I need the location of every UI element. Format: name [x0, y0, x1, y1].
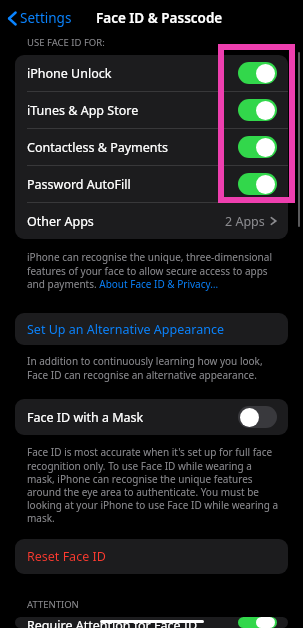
staticText: iTunes & App Store	[27, 102, 238, 119]
button[interactable]: Password AutoFill	[238, 173, 277, 195]
button[interactable]: iTunes & App Store	[238, 99, 277, 121]
button[interactable]: Settings	[8, 9, 72, 27]
staticText: 2 Apps	[225, 213, 265, 230]
button[interactable]: Password AutoFill	[15, 166, 288, 202]
button[interactable]: iTunes & App Store	[15, 92, 288, 128]
staticText: iPhone Unlock	[27, 65, 238, 82]
staticText: USE FACE ID FOR:	[27, 36, 105, 49]
staticText: iPhone can recognise the unique, three-d…	[27, 250, 282, 291]
staticText: Face ID with a Mask	[27, 409, 238, 426]
staticText: Settings	[20, 9, 72, 27]
staticText: ATTENTION	[27, 598, 79, 611]
staticText: In addition to continuously learning how…	[27, 354, 282, 382]
button[interactable]: Reset Face ID	[15, 539, 288, 574]
staticText: Require Attention for Face ID	[27, 617, 238, 628]
staticText: Other Apps	[27, 213, 225, 230]
button[interactable]: iPhone Unlock	[15, 55, 288, 91]
staticText: Password AutoFill	[27, 176, 238, 193]
button[interactable]: Other Apps	[15, 203, 288, 239]
button[interactable]: Require Attention for Face ID	[238, 617, 277, 628]
staticText: Contactless & Payments	[27, 139, 238, 156]
button[interactable]: Set Up an Alternative Appearance	[15, 313, 288, 345]
button[interactable]: iPhone Unlock	[238, 62, 277, 84]
staticText: Set Up an Alternative Appearance	[27, 321, 224, 338]
button[interactable]: Require Attention for Face ID	[15, 617, 288, 628]
button[interactable]: Face ID with a Mask	[238, 406, 277, 428]
button[interactable]: Contactless & Payments	[15, 129, 288, 165]
staticText: Face ID is most accurate when it's set u…	[27, 445, 282, 525]
staticText: Reset Face ID	[27, 548, 106, 565]
button[interactable]: Contactless & Payments	[238, 136, 277, 158]
button[interactable]: Face ID with a Mask	[15, 399, 288, 435]
staticText: Face ID & Passcode	[96, 9, 223, 27]
